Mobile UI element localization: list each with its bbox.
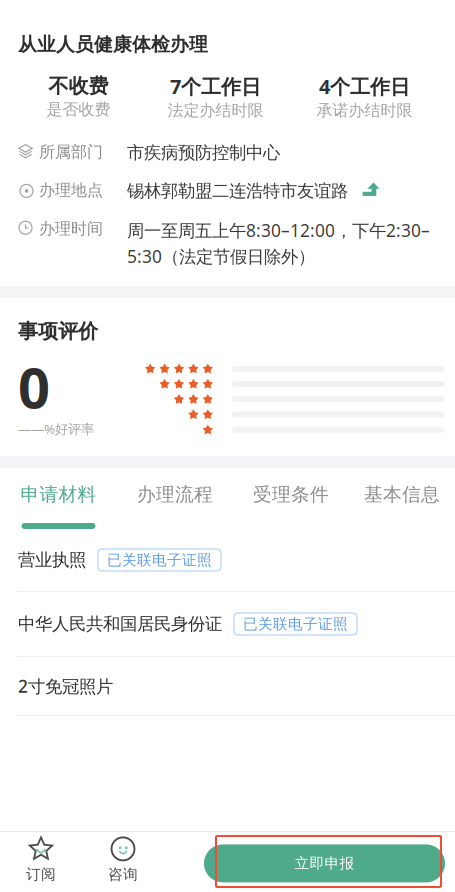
staticText: 不收费 [48,74,108,98]
staticText: 办理时间 [39,219,103,238]
button[interactable]: 订阅 [0,832,82,883]
button[interactable]: 咨询 [82,832,164,883]
button[interactable]: 基本信息 [349,468,455,529]
button[interactable]: 受理条件 [233,468,349,529]
staticText: 7个工作日 [170,73,261,99]
staticText: 中华人民共和国居民身份证 [18,613,222,635]
staticText: 办理地点 [39,180,103,200]
staticText: 受理条件 [253,483,329,506]
staticText: 已关联电子证照 [107,551,212,569]
staticText: 市疾病预防控制中心 [127,142,280,163]
staticText: 锡林郭勒盟二连浩特市友谊路 [127,180,348,202]
staticText: 订阅 [26,865,56,883]
staticText: ——%好评率 [18,420,94,438]
staticText: 是否收费 [46,99,110,119]
staticText: 所属部门 [39,142,103,162]
staticText: 承诺办结时限 [316,100,412,120]
staticText: 从业人员健康体检办理 [18,33,208,56]
staticText: 0 [18,350,50,424]
staticText: 4个工作日 [319,73,410,99]
staticText: 营业执照 [18,549,86,571]
staticText: 已关联电子证照 [243,615,348,633]
staticText: 2寸免冠照片 [18,674,113,697]
staticText: 办理流程 [137,483,213,506]
staticText: 基本信息 [364,483,440,506]
button[interactable]: 立即申报 [204,844,445,882]
staticText: 事项评价 [18,319,98,344]
button[interactable]: 办理流程 [117,468,233,529]
staticText: 咨询 [108,865,138,883]
staticText: 申请材料 [20,483,96,506]
button[interactable]: 申请材料 [0,468,117,529]
staticText: 周一至周五上午8:30–12:00，下午2:30–5:30（法定节假日除外） [127,219,430,268]
staticText: 法定办结时限 [167,100,263,120]
staticText: 立即申报 [294,854,354,872]
